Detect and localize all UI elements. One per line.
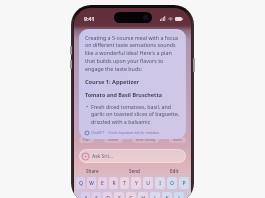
staticText: ChatGPT · Check important info for mista… — [91, 131, 160, 135]
button[interactable]: Q — [76, 177, 85, 189]
staticText: Share — [86, 168, 99, 174]
staticText: R — [112, 180, 116, 187]
button[interactable]: T — [120, 177, 129, 189]
button[interactable]: Edit — [167, 167, 182, 175]
button[interactable]: R — [109, 177, 118, 189]
staticText: T — [123, 180, 126, 187]
staticText: K — [165, 195, 169, 198]
button[interactable]: Plan — [79, 137, 94, 143]
staticText: Y — [135, 180, 138, 187]
staticText: A — [84, 195, 88, 198]
button[interactable]: U — [143, 177, 153, 189]
button[interactable]: K — [162, 192, 172, 198]
staticText: E — [101, 180, 104, 187]
staticText: Fresh diced tomatoes, basil, and garlic … — [91, 103, 180, 126]
button[interactable]: Dinner — [104, 137, 123, 143]
staticText: Creating a 5-course meal with a focus on… — [85, 34, 180, 73]
button[interactable]: S — [92, 192, 101, 198]
button[interactable]: Creating a 5-course meal with a focus on… — [79, 29, 186, 139]
button[interactable]: G — [126, 192, 136, 198]
staticText: Ask Siri… — [92, 153, 113, 160]
staticText: D — [106, 195, 110, 198]
staticText: I — [159, 180, 161, 187]
staticText: F — [118, 195, 121, 198]
button[interactable]: L — [174, 192, 184, 198]
staticText: U — [146, 180, 150, 187]
staticText: 9:41 — [84, 15, 95, 22]
staticText: P — [182, 180, 186, 187]
button[interactable]: Wine Pairing — [132, 137, 159, 143]
button[interactable]: Send — [126, 167, 143, 175]
button[interactable]: J — [150, 192, 160, 198]
staticText: S — [95, 195, 98, 198]
staticText: Wine Pairing — [136, 138, 155, 142]
button[interactable]: Y — [131, 177, 141, 189]
button[interactable]: W — [87, 177, 96, 189]
staticText: Notes — [173, 138, 182, 142]
staticText: L — [178, 195, 181, 198]
button[interactable]: Assistant — [79, 149, 186, 163]
button[interactable]: A — [81, 192, 90, 198]
staticText: O — [170, 180, 174, 187]
button[interactable]: H — [138, 192, 148, 198]
staticText: Dinner — [108, 138, 119, 142]
button[interactable]: Notes — [169, 137, 186, 143]
staticText: Tomato and Basil Bruschetta — [85, 91, 162, 98]
staticText: Edit — [170, 168, 179, 174]
staticText: J — [154, 195, 156, 198]
button[interactable]: D — [103, 192, 112, 198]
button[interactable]: F — [114, 192, 124, 198]
button[interactable]: P — [179, 177, 189, 189]
staticText: H — [141, 195, 145, 198]
staticText: • — [86, 103, 88, 110]
staticText: Q — [79, 180, 83, 187]
button[interactable]: O — [167, 177, 177, 189]
button[interactable]: Share — [83, 167, 102, 175]
button[interactable]: E — [98, 177, 107, 189]
staticText: Plan — [83, 138, 90, 142]
staticText: G — [129, 195, 133, 198]
staticText: Send — [129, 168, 140, 174]
staticText: W — [89, 180, 94, 187]
button[interactable]: I — [155, 177, 165, 189]
staticText: Course 1: Appetizer — [85, 78, 140, 86]
other: Assistant — [82, 153, 89, 160]
